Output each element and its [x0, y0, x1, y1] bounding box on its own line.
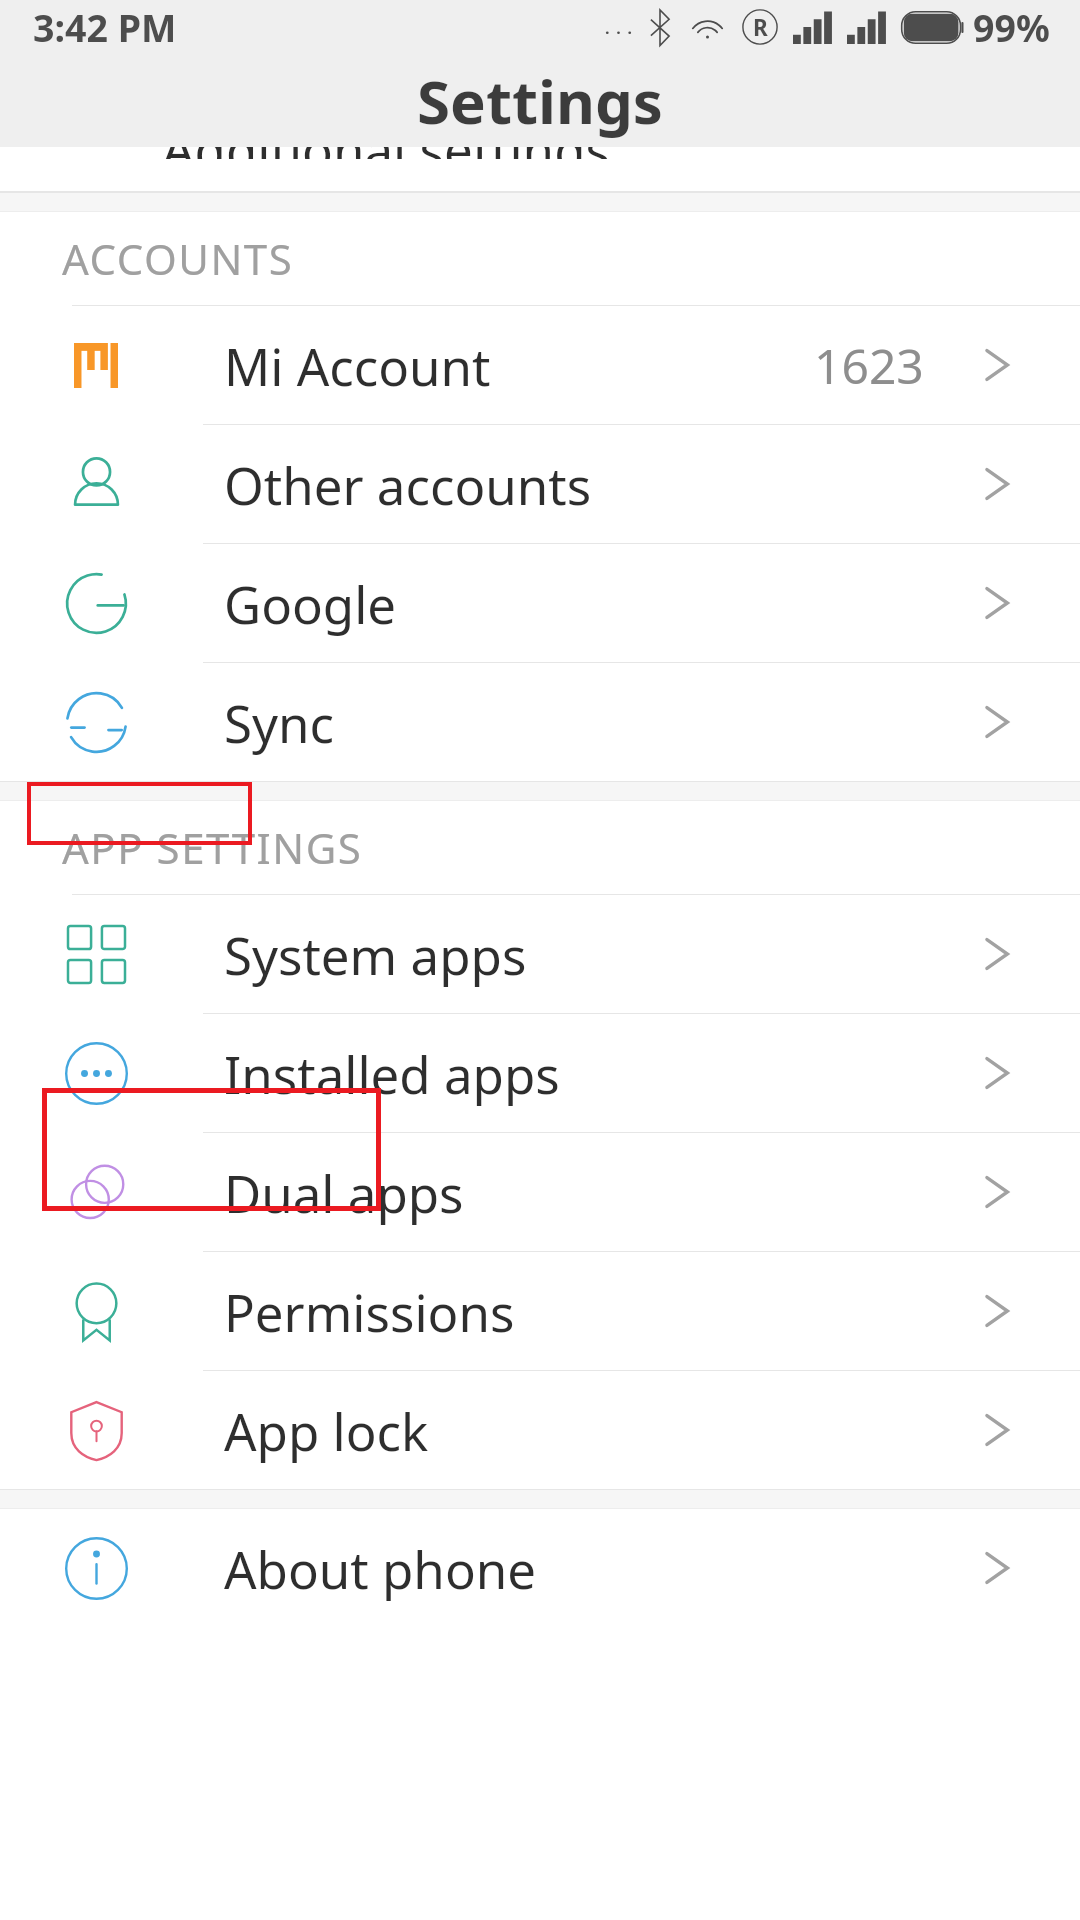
staticText: APP SETTINGS: [62, 819, 363, 876]
staticText: R: [753, 12, 768, 43]
staticText: 1623: [814, 333, 924, 398]
button[interactable]: App lock: [0, 1371, 1080, 1489]
staticText: Installed apps: [224, 1039, 560, 1108]
staticText: ACCOUNTS: [62, 230, 294, 287]
button[interactable]: Installed apps: [0, 1014, 1080, 1133]
staticText: System apps: [224, 920, 527, 989]
button[interactable]: Sync: [0, 663, 1080, 781]
staticText: Other accounts: [224, 450, 592, 519]
staticText: Dual apps: [224, 1158, 464, 1227]
button[interactable]: System apps: [0, 895, 1080, 1014]
button[interactable]: Dual apps: [0, 1133, 1080, 1252]
staticText: Mi Account: [224, 331, 491, 400]
button[interactable]: Additional settings: [0, 147, 1080, 192]
button[interactable]: Permissions: [0, 1252, 1080, 1371]
button[interactable]: Google: [0, 544, 1080, 663]
staticText: Sync: [224, 688, 335, 757]
other: Mi: [74, 343, 118, 388]
staticText: 3:42 PM: [33, 2, 177, 53]
staticText: App lock: [224, 1396, 429, 1465]
button[interactable]: Other accounts: [0, 425, 1080, 544]
staticText: 99%: [973, 2, 1050, 53]
button[interactable]: About phone: [0, 1509, 1080, 1627]
staticText: Additional settings: [162, 114, 610, 159]
staticText: About phone: [224, 1534, 537, 1603]
staticText: Google: [224, 569, 397, 638]
staticText: Settings: [417, 60, 663, 142]
staticText: Permissions: [224, 1277, 515, 1346]
button[interactable]: Mi: [0, 306, 1080, 425]
